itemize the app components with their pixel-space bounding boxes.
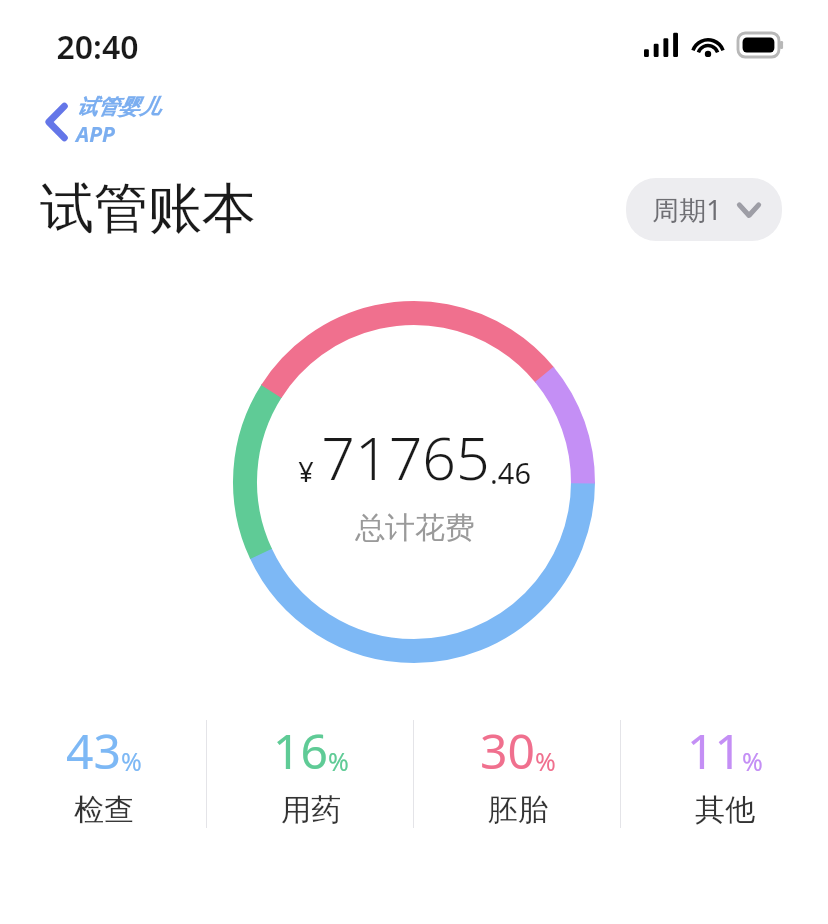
staticText: APP xyxy=(76,120,115,149)
staticText: 试管婴儿 xyxy=(76,94,160,120)
staticText: % xyxy=(121,744,142,778)
staticText: % xyxy=(742,744,763,778)
button[interactable]: 周期1 xyxy=(626,178,782,241)
staticText: 71765 xyxy=(321,417,490,497)
staticText: 周期1 xyxy=(652,191,722,228)
staticText: 43 xyxy=(66,718,121,783)
staticText: .46 xyxy=(490,453,531,492)
button[interactable]: 30 xyxy=(414,718,621,829)
button[interactable]: 43 xyxy=(0,718,207,829)
button[interactable]: 11 xyxy=(621,718,828,829)
staticText: % xyxy=(535,744,556,778)
button[interactable]: 16 xyxy=(207,718,414,829)
staticText: 30 xyxy=(480,718,535,783)
staticText: 用药 xyxy=(281,791,341,829)
button[interactable]: Back to 试管婴儿 APP xyxy=(40,90,166,153)
staticText: 总计花费 xyxy=(355,509,475,547)
staticText: 20:40 xyxy=(56,25,139,69)
staticText: 试管账本 xyxy=(40,175,256,243)
staticText: 其他 xyxy=(695,791,755,829)
staticText: 11 xyxy=(687,718,742,783)
staticText: ¥ xyxy=(298,453,314,490)
staticText: 16 xyxy=(273,718,328,783)
staticText: 检查 xyxy=(74,791,134,829)
staticText: 胚胎 xyxy=(488,791,548,829)
staticText: % xyxy=(328,744,349,778)
